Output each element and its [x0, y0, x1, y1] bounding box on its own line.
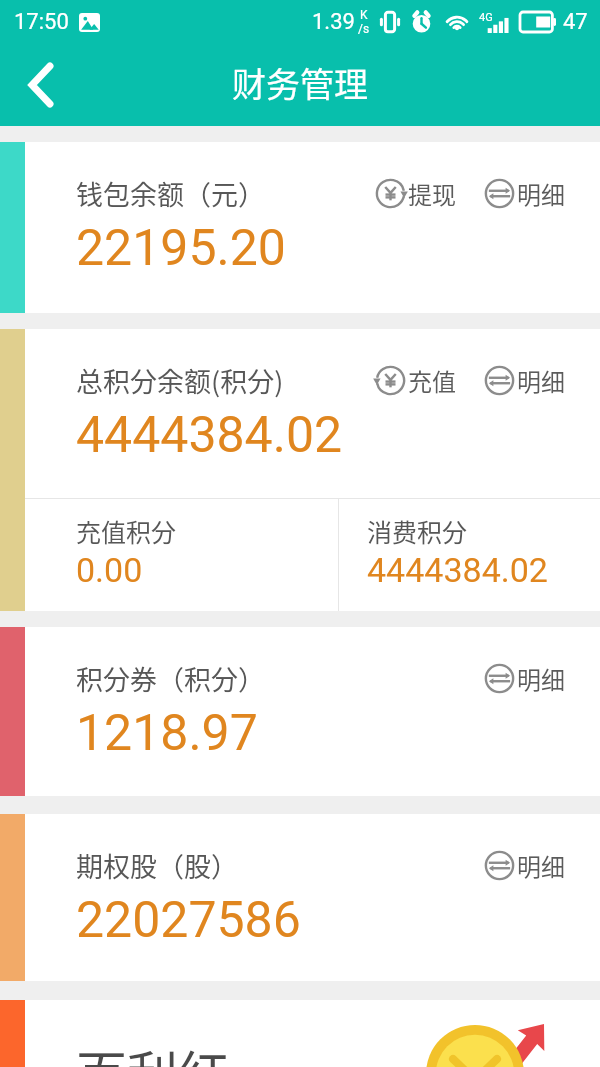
staticText: 积分券（积分）	[76, 659, 265, 698]
staticText: 财务管理	[232, 58, 368, 107]
staticText: 47	[563, 9, 588, 35]
staticText: 期权股（股）	[76, 846, 238, 885]
button[interactable]: 明细	[484, 363, 565, 398]
staticText: 4444384.02	[367, 550, 548, 590]
button[interactable]: 提现	[375, 176, 456, 211]
button[interactable]: 明细	[484, 661, 565, 696]
staticText: 17:50	[14, 9, 69, 35]
staticText: 22027586	[76, 891, 301, 950]
staticText: K	[360, 8, 368, 22]
staticText: 消费积分	[367, 513, 468, 549]
staticText: /s	[358, 22, 370, 36]
staticText: 钱包余额（元）	[76, 174, 265, 213]
button[interactable]: 明细	[484, 848, 565, 883]
staticText: 提现	[408, 176, 456, 211]
staticText: 4444384.02	[76, 406, 343, 465]
staticText: 明细	[517, 176, 565, 211]
button[interactable]: Back	[0, 47, 76, 123]
staticText: 1218.97	[76, 704, 258, 763]
button[interactable]: 充值	[375, 363, 456, 398]
staticText: 22195.20	[76, 219, 286, 278]
staticText: 充值	[408, 363, 456, 398]
staticText: 充值积分	[76, 513, 177, 549]
staticText: 明细	[517, 848, 565, 883]
staticText: 总积分余额(积分)	[76, 361, 284, 400]
staticText: 明细	[517, 661, 565, 696]
staticText: 1.39	[312, 9, 355, 35]
staticText: 明细	[517, 363, 565, 398]
staticText: 4G	[479, 11, 493, 24]
button[interactable]: 明细	[484, 176, 565, 211]
staticText: 0.00	[76, 550, 143, 590]
staticText: 百利红	[76, 1035, 230, 1067]
